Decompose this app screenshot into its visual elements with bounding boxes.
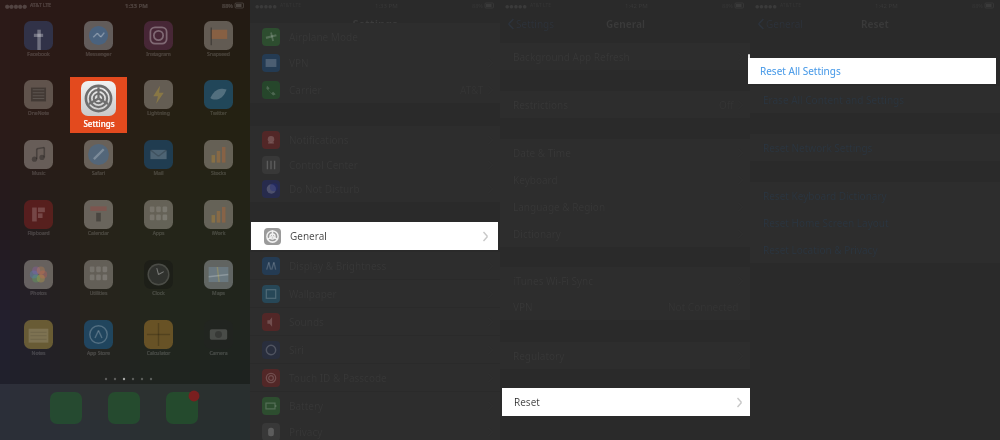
button[interactable]: Sounds (250, 308, 500, 335)
staticText: General (606, 17, 645, 31)
button[interactable]: Flipboard (24, 200, 53, 229)
button[interactable]: Reset All Settings (748, 58, 996, 84)
button[interactable]: Background App Refresh (500, 43, 750, 70)
button[interactable]: Back to Settings (508, 17, 555, 31)
staticText: Mail (140, 170, 177, 177)
staticText: Reset All Settings (760, 64, 841, 78)
button[interactable]: Dock app (108, 392, 140, 424)
button[interactable]: OneNote (24, 80, 53, 109)
button[interactable]: Dock app (166, 392, 198, 424)
staticText: Photos (20, 290, 57, 297)
button[interactable]: Calculator (144, 320, 173, 349)
staticText: Reset Keyboard Dictionary (763, 189, 887, 203)
staticText: Camera (200, 350, 237, 357)
button[interactable]: Safari (84, 140, 113, 169)
staticText: Erase All Content and Settings (763, 93, 905, 107)
button[interactable]: Notes (24, 320, 53, 349)
button[interactable]: VPN (250, 49, 500, 76)
staticText: Notes (20, 350, 57, 357)
button[interactable]: Facebook (24, 21, 53, 50)
button[interactable]: Battery (250, 392, 500, 419)
button[interactable]: Apps (144, 200, 173, 229)
staticText: 1:33 PM (125, 2, 148, 10)
staticText: ●●●●● (755, 3, 777, 9)
button[interactable]: Notifications (250, 126, 500, 153)
staticText: Settings (250, 16, 500, 31)
staticText: Safari (80, 170, 117, 177)
button[interactable]: Do Not Disturb (250, 175, 500, 202)
button[interactable]: Lightning (144, 80, 173, 109)
staticText: Music (20, 170, 57, 177)
staticText: Stocks (200, 170, 237, 177)
staticText: Instagram (140, 51, 177, 58)
staticText: OneNote (20, 110, 57, 117)
button[interactable]: Siri (250, 336, 500, 363)
button[interactable]: Utilities (84, 260, 113, 289)
button[interactable]: Control Center (250, 151, 500, 178)
button[interactable]: iWork (204, 200, 233, 229)
button[interactable]: Maps (204, 260, 233, 289)
staticText: Calendar (80, 230, 117, 237)
button[interactable]: General (251, 222, 498, 250)
button[interactable]: Mail (144, 140, 173, 169)
staticText: General (766, 17, 803, 31)
staticText: Reset Location & Privacy (763, 243, 878, 257)
button[interactable]: Privacy (250, 418, 500, 440)
staticText: ●●●●● (505, 3, 527, 9)
staticText: App Store (80, 350, 117, 357)
button[interactable]: Twitter (204, 80, 233, 109)
button[interactable]: Stocks (204, 140, 233, 169)
button[interactable]: Airplane Mode (250, 23, 500, 50)
button[interactable]: Carrier (250, 76, 500, 103)
button[interactable]: Calendar (84, 200, 113, 229)
button[interactable]: Clock (144, 260, 173, 289)
button[interactable]: Messenger (84, 21, 113, 50)
button[interactable]: Display & Brightness (250, 252, 500, 279)
button[interactable]: Touch ID & Passcode (250, 364, 500, 391)
button[interactable]: Instagram (144, 21, 173, 50)
button[interactable]: Photos (24, 260, 53, 289)
button[interactable]: Dock app (50, 392, 82, 424)
button[interactable]: Reset (502, 388, 752, 416)
button[interactable]: Camera (204, 320, 233, 349)
button[interactable]: App Store (84, 320, 113, 349)
staticText: Apps (140, 230, 177, 237)
button[interactable]: Music (24, 140, 53, 169)
button[interactable]: Back to General (758, 17, 803, 31)
button[interactable]: Wallpaper (250, 280, 500, 307)
button[interactable]: Settings (70, 77, 127, 133)
button[interactable]: Snapseed (204, 21, 233, 50)
